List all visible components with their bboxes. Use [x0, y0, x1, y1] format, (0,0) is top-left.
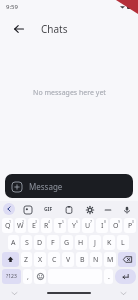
- button[interactable]: ,: [23, 269, 32, 284]
- staticText: K: [107, 238, 112, 248]
- button[interactable]: Stickers: [20, 202, 35, 217]
- button[interactable]: B: [76, 252, 88, 267]
- button[interactable]: X: [34, 252, 46, 267]
- button[interactable]: V: [62, 252, 74, 267]
- staticText: C: [52, 255, 57, 265]
- staticText: B: [80, 255, 85, 265]
- staticText: O: [113, 221, 119, 231]
- staticText: T: [58, 221, 62, 231]
- staticText: M: [107, 255, 114, 265]
- button[interactable]: K: [103, 235, 115, 250]
- button[interactable]: T: [54, 218, 66, 233]
- staticText: Q: [5, 221, 11, 231]
- staticText: H: [78, 238, 84, 248]
- staticText: S: [25, 238, 29, 248]
- staticText: ?123: [6, 273, 17, 280]
- button[interactable]: F: [47, 235, 59, 250]
- button[interactable]: Enter: [115, 269, 136, 284]
- button[interactable]: O: [110, 218, 122, 233]
- staticText: 2: [22, 219, 25, 224]
- button[interactable]: GIF: [41, 203, 55, 215]
- button[interactable]: Z: [21, 252, 32, 267]
- button[interactable]: Expand toolbar: [3, 203, 15, 215]
- staticText: J: [94, 238, 96, 248]
- staticText: P: [128, 221, 133, 231]
- button[interactable]: Clipboard: [61, 202, 76, 217]
- staticText: 0: [132, 219, 135, 224]
- button[interactable]: G: [61, 235, 73, 250]
- staticText: N: [93, 255, 99, 265]
- staticText: I: [101, 221, 104, 231]
- staticText: GIF: [44, 206, 53, 213]
- button[interactable]: H: [75, 235, 87, 250]
- staticText: 1: [9, 219, 12, 224]
- button[interactable]: C: [48, 252, 60, 267]
- staticText: W: [17, 221, 24, 231]
- staticText: .: [108, 272, 110, 282]
- button[interactable]: P: [124, 218, 136, 233]
- button[interactable]: L: [117, 235, 129, 250]
- staticText: 5: [62, 219, 65, 224]
- staticText: Y: [72, 221, 76, 231]
- staticText: V: [66, 255, 71, 265]
- staticText: Message: [29, 181, 63, 192]
- staticText: U: [85, 221, 91, 231]
- staticText: F: [51, 238, 55, 248]
- button[interactable]: I: [96, 218, 108, 233]
- staticText: R: [44, 221, 49, 231]
- button[interactable]: J: [89, 235, 101, 250]
- button[interactable]: Backspace: [118, 252, 136, 267]
- staticText: ,: [27, 272, 29, 282]
- staticText: D: [37, 238, 43, 248]
- button[interactable]: Q: [2, 218, 13, 233]
- button[interactable]: E: [28, 218, 39, 233]
- staticText: 4: [48, 219, 51, 224]
- staticText: No messages here yet: [33, 88, 106, 98]
- button[interactable]: Settings: [82, 202, 97, 217]
- staticText: 8: [104, 219, 107, 224]
- button[interactable]: U: [82, 218, 94, 233]
- button[interactable]: D: [34, 235, 45, 250]
- button[interactable]: Add attachment: [5, 174, 133, 198]
- button[interactable]: W: [15, 218, 26, 233]
- button[interactable]: More options: [100, 202, 115, 217]
- button[interactable]: Add attachment: [11, 181, 22, 192]
- button[interactable]: N: [90, 252, 102, 267]
- button[interactable]: R: [41, 218, 52, 233]
- staticText: 6: [76, 219, 79, 224]
- staticText: 3: [35, 219, 38, 224]
- button[interactable]: .: [104, 269, 113, 284]
- button[interactable]: Shift: [2, 252, 19, 267]
- staticText: G: [64, 238, 70, 248]
- staticText: Z: [24, 255, 29, 265]
- button[interactable]: S: [21, 235, 32, 250]
- button[interactable]: M: [104, 252, 116, 267]
- staticText: 9:59: [6, 3, 18, 11]
- button[interactable]: Emoji: [34, 269, 46, 284]
- staticText: 7: [90, 219, 93, 224]
- button[interactable]: ?123: [2, 269, 21, 284]
- staticText: 9: [118, 219, 121, 224]
- staticText: Chats: [41, 22, 68, 36]
- staticText: A: [11, 238, 16, 248]
- button[interactable]: Y: [68, 218, 80, 233]
- button[interactable]: Voice input: [119, 202, 134, 217]
- staticText: X: [38, 255, 43, 265]
- button[interactable]: A: [8, 235, 19, 250]
- staticText: E: [32, 221, 36, 231]
- staticText: L: [121, 238, 125, 248]
- button[interactable]: Back: [9, 19, 29, 39]
